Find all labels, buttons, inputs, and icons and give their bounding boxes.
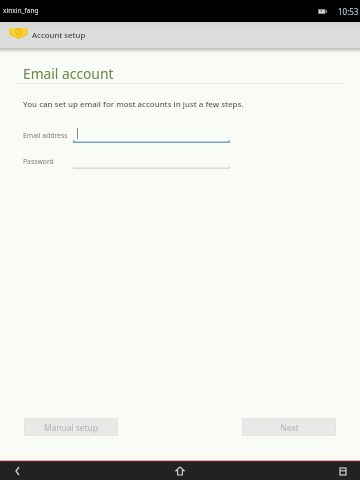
button[interactable]: Next — [242, 418, 336, 436]
button[interactable]: Recent apps — [331, 462, 355, 480]
button[interactable]: Home — [168, 462, 192, 480]
staticText: 10:53 — [338, 6, 359, 17]
staticText: Manual setup — [44, 422, 98, 433]
staticText: Email address — [23, 131, 68, 140]
button[interactable]: Manual setup — [24, 418, 118, 436]
staticText: Account setup — [32, 30, 86, 41]
staticText: xinxin_fang — [3, 6, 39, 15]
staticText: Password — [23, 157, 54, 166]
staticText: You can set up email for most accounts i… — [23, 99, 244, 110]
button[interactable]: Account setup — [0, 22, 360, 48]
staticText: Next — [280, 422, 299, 433]
button[interactable]: Battery — [318, 9, 327, 14]
button[interactable]: Back — [5, 462, 29, 480]
staticText: Email account — [23, 64, 114, 83]
